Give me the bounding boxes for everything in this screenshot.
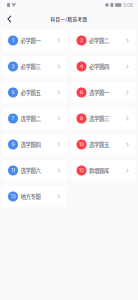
button[interactable]: 13 [2, 186, 67, 207]
staticText: 科目一/精选考题 [50, 16, 87, 22]
staticText: 12 [79, 167, 84, 173]
staticText: 新增题库 [89, 167, 109, 174]
staticText: 必学题一 [20, 37, 40, 44]
button[interactable]: 3 [2, 56, 67, 77]
staticText: 10 [79, 141, 84, 147]
staticText: 选学题三 [89, 115, 109, 122]
staticText: 8 [80, 115, 83, 121]
button[interactable]: 4 [71, 56, 135, 77]
button[interactable]: Back [0, 11, 17, 27]
staticText: 9 [11, 141, 14, 147]
button[interactable]: 8 [71, 108, 135, 129]
staticText: 选学题四 [20, 141, 40, 148]
button[interactable]: 11 [2, 160, 67, 181]
staticText: 选学题二 [20, 115, 40, 122]
staticText: 选学题五 [89, 141, 109, 148]
staticText: 6 [80, 89, 83, 95]
staticText: 必学题四 [89, 63, 109, 70]
button[interactable]: 5 [2, 82, 67, 103]
staticText: 11 [11, 167, 15, 173]
button[interactable]: 2 [71, 30, 135, 51]
staticText: 5:06 [123, 2, 133, 8]
staticText: 7 [11, 115, 14, 121]
staticText: 必学题三 [20, 63, 40, 70]
button[interactable]: 10 [71, 134, 135, 155]
staticText: 必学题五 [20, 89, 40, 96]
staticText: 3 [11, 63, 14, 69]
staticText: 选学题一 [89, 89, 109, 96]
button[interactable]: 6 [71, 82, 135, 103]
staticText: 必学题二 [89, 37, 109, 44]
staticText: 地方专题 [20, 193, 40, 200]
button[interactable]: 1 [2, 30, 67, 51]
staticText: 2 [80, 37, 83, 43]
button[interactable]: 7 [2, 108, 67, 129]
staticText: 选学题六 [20, 167, 40, 174]
button[interactable]: 9 [2, 134, 67, 155]
button[interactable]: 12 [71, 160, 135, 181]
staticText: 1 [12, 37, 14, 43]
staticText: 13 [10, 193, 15, 199]
staticText: 5 [11, 89, 14, 95]
staticText: 4 [80, 63, 83, 69]
